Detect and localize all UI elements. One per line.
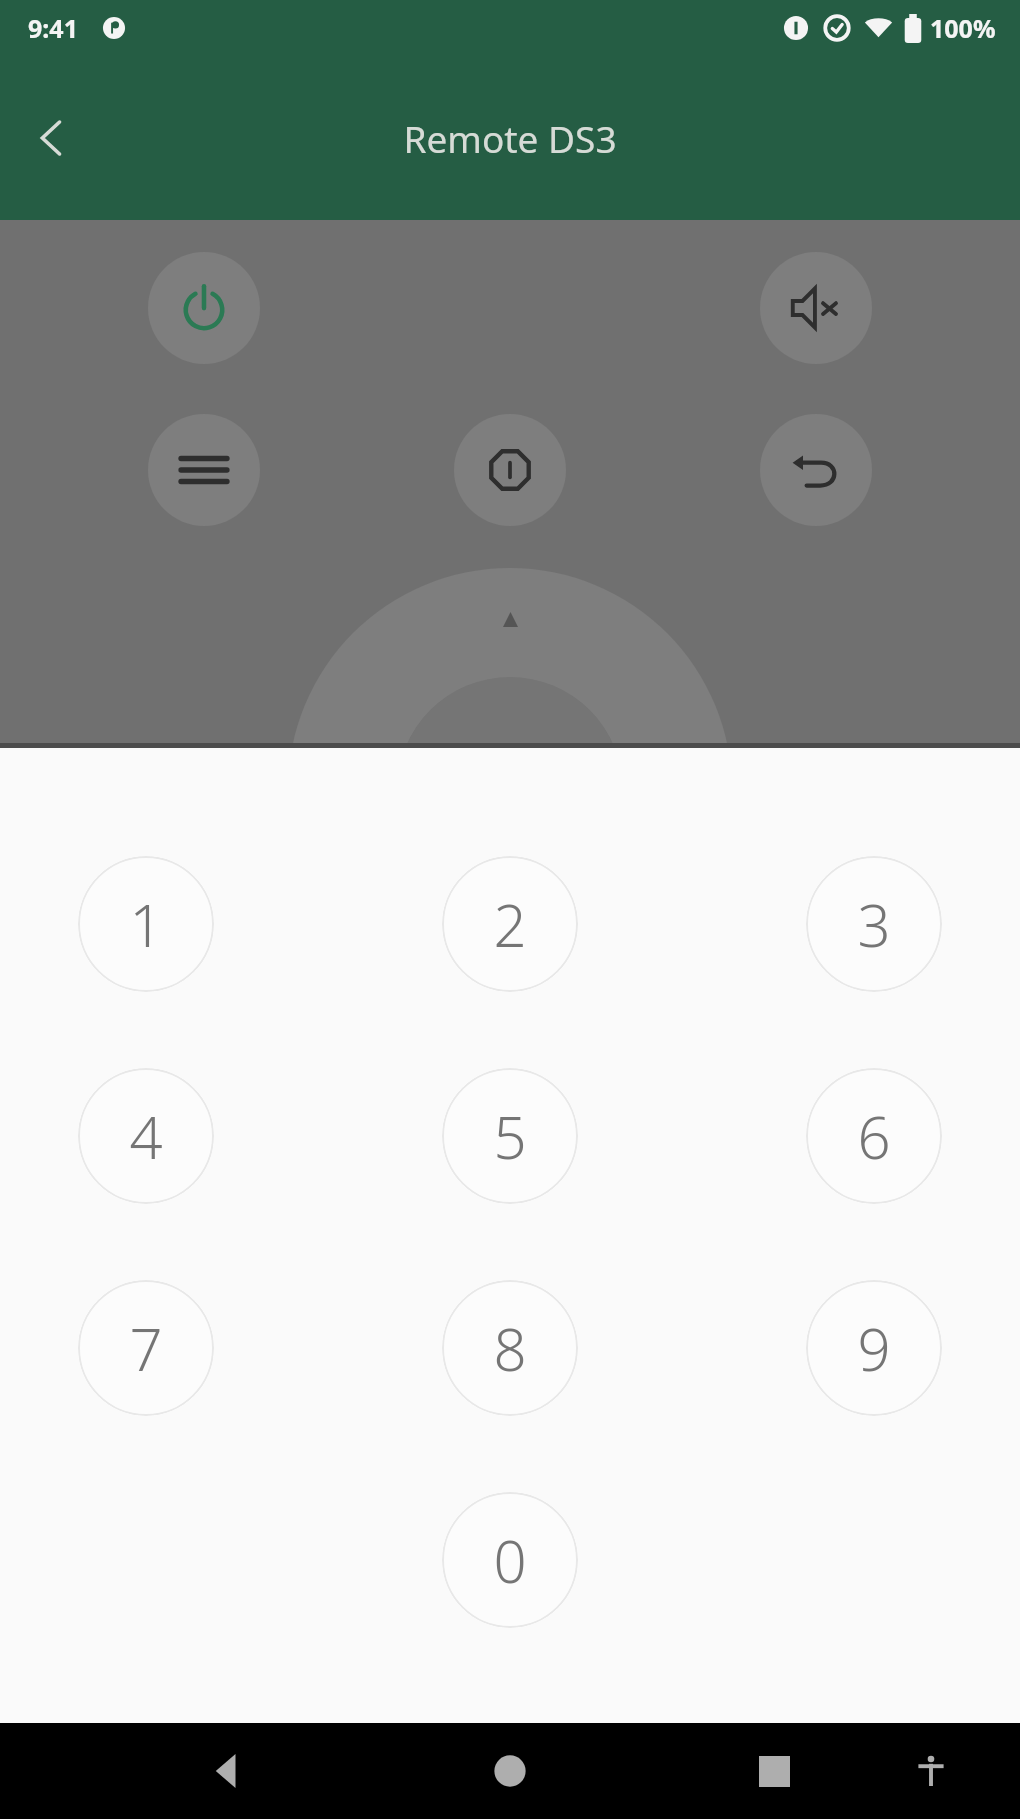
staticText: 2 (493, 885, 527, 964)
staticText: 5 (493, 1097, 527, 1176)
button[interactable]: Direction pad (288, 568, 732, 1012)
staticText: Remote DS3 (403, 113, 617, 163)
button[interactable]: Info (454, 414, 566, 526)
staticText: 1 (129, 885, 163, 964)
staticText: 100% (930, 11, 996, 45)
button[interactable]: 1 (78, 856, 214, 992)
button[interactable]: Power (148, 252, 260, 364)
button[interactable]: Recents (736, 1733, 812, 1809)
button[interactable]: Back (760, 414, 872, 526)
staticText: 0 (493, 1521, 527, 1600)
button[interactable]: Menu (148, 414, 260, 526)
button[interactable]: 3 (806, 856, 942, 992)
button[interactable]: Mute (760, 252, 872, 364)
button[interactable]: 4 (78, 1068, 214, 1204)
staticText: 7 (129, 1309, 163, 1388)
staticText: 9:41 (28, 11, 78, 45)
button[interactable]: Back (14, 100, 90, 176)
button[interactable]: Home (472, 1733, 548, 1809)
staticText: 4 (129, 1097, 163, 1176)
button[interactable]: Accessibility (900, 1740, 962, 1802)
button[interactable]: 6 (806, 1068, 942, 1204)
staticText: 8 (493, 1309, 527, 1388)
button[interactable]: 2 (442, 856, 578, 992)
button[interactable]: 5 (442, 1068, 578, 1204)
button[interactable]: 7 (78, 1280, 214, 1416)
button[interactable]: 8 (442, 1280, 578, 1416)
staticText: 9 (857, 1309, 891, 1388)
button[interactable]: Back (190, 1733, 266, 1809)
button[interactable]: 0 (442, 1492, 578, 1628)
staticText: 6 (857, 1097, 891, 1176)
staticText: 3 (857, 885, 891, 964)
button[interactable]: OK (397, 677, 623, 903)
button[interactable]: 9 (806, 1280, 942, 1416)
